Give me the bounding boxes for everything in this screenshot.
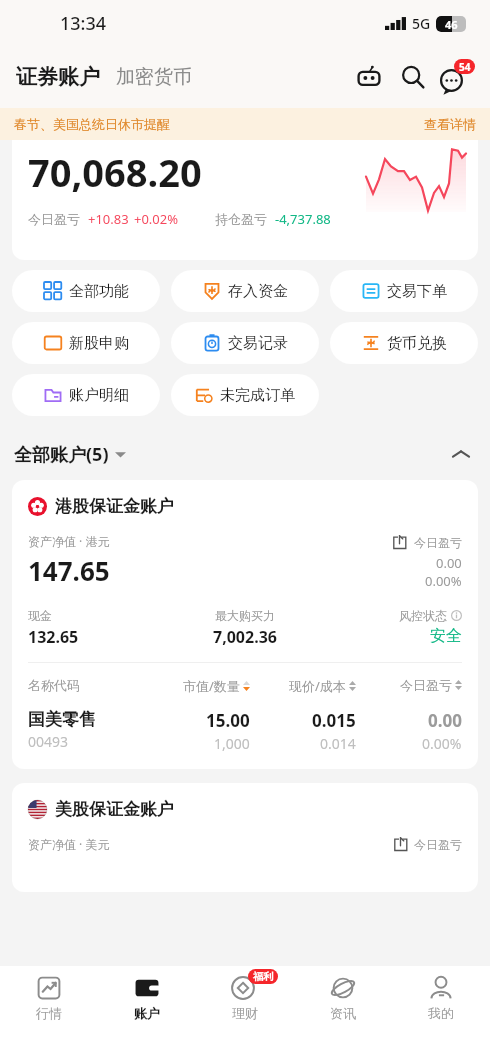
- staticText: 账户明细: [69, 386, 129, 405]
- button[interactable]: 存入资金: [171, 270, 319, 312]
- staticText: 132.65: [28, 626, 79, 648]
- staticText: -4,737.88: [275, 210, 331, 228]
- staticText: 资讯: [330, 1005, 356, 1021]
- staticText: +0.02%: [134, 210, 179, 228]
- staticText: 0.00: [436, 554, 462, 572]
- staticText: 我的: [428, 1005, 454, 1021]
- staticText: 54: [459, 60, 471, 74]
- staticText: 市值/数量: [183, 677, 240, 695]
- button[interactable]: 证券账户: [16, 64, 100, 90]
- staticText: 新股申购: [69, 334, 129, 353]
- staticText: 国美零售: [28, 709, 96, 730]
- button[interactable]: 市值/数量: [144, 677, 250, 695]
- staticText: 交易下单: [387, 282, 447, 301]
- staticText: 现金: [28, 608, 52, 623]
- staticText: 现价/成本: [289, 677, 346, 695]
- staticText: 名称代码: [28, 677, 144, 693]
- button[interactable]: Collapse: [446, 440, 476, 468]
- button[interactable]: 行情: [0, 966, 98, 1042]
- staticText: 美股保证金账户: [55, 799, 174, 820]
- staticText: 最大购买力: [215, 608, 275, 623]
- button[interactable]: 交易记录: [171, 322, 319, 364]
- staticText: +10.83: [88, 210, 129, 228]
- staticText: 全部账户(5): [14, 442, 109, 467]
- button[interactable]: 加密货币: [116, 65, 192, 90]
- button[interactable]: 我的: [392, 966, 490, 1042]
- button[interactable]: 资讯: [294, 966, 392, 1042]
- staticText: 今日盈亏: [400, 677, 452, 693]
- button[interactable]: 新股申购: [12, 322, 160, 364]
- staticText: 5G: [412, 14, 431, 33]
- staticText: 理财: [232, 1005, 258, 1021]
- button[interactable]: 春节、美国总统日休市提醒: [0, 108, 490, 140]
- staticText: 0.015: [312, 709, 356, 732]
- staticText: 查看详情: [424, 116, 476, 132]
- button[interactable]: 全部账户(5): [14, 442, 126, 467]
- staticText: 账户: [134, 1005, 160, 1021]
- staticText: 未完成订单: [220, 386, 295, 405]
- staticText: 港股保证金账户: [55, 496, 174, 517]
- staticText: 00493: [28, 732, 69, 751]
- button[interactable]: 交易下单: [330, 270, 478, 312]
- button[interactable]: 账户明细: [12, 374, 160, 416]
- staticText: 安全: [430, 626, 462, 646]
- button[interactable]: 未完成订单: [171, 374, 319, 416]
- button[interactable]: 70,068.20: [12, 140, 478, 260]
- button[interactable]: 现价/成本: [250, 677, 356, 695]
- staticText: 交易记录: [228, 334, 288, 353]
- button[interactable]: 货币兑换: [330, 322, 478, 364]
- button[interactable]: Search: [396, 60, 430, 94]
- staticText: 证券账户: [16, 64, 100, 90]
- button[interactable]: 今日盈亏: [356, 677, 462, 693]
- staticText: 15.00: [206, 709, 250, 732]
- button[interactable]: AI assistant: [352, 60, 386, 94]
- staticText: 加密货币: [116, 65, 192, 89]
- button[interactable]: Messages, 54 unread: [438, 58, 476, 96]
- button[interactable]: 港股保证金账户: [12, 480, 478, 769]
- staticText: 持仓盈亏: [215, 211, 267, 227]
- staticText: 今日盈亏: [414, 837, 462, 852]
- staticText: 风控状态: [399, 608, 447, 623]
- staticText: 46: [445, 17, 458, 32]
- staticText: 全部功能: [69, 282, 129, 301]
- staticText: 7,002.36: [213, 626, 277, 648]
- staticText: 70,068.20: [28, 146, 202, 198]
- button[interactable]: 美股保证金账户: [12, 783, 478, 892]
- button[interactable]: 账户: [98, 966, 196, 1042]
- staticText: 资产净值 · 港元: [28, 533, 110, 549]
- button[interactable]: Share: [390, 533, 408, 551]
- staticText: 0.00%: [422, 734, 462, 753]
- staticText: 0.00%: [425, 572, 462, 590]
- staticText: 行情: [36, 1005, 62, 1021]
- staticText: 货币兑换: [387, 334, 447, 353]
- staticText: 存入资金: [228, 282, 288, 301]
- button[interactable]: 全部功能: [12, 270, 160, 312]
- staticText: 1,000: [214, 734, 250, 753]
- staticText: 今日盈亏: [28, 211, 80, 227]
- staticText: 13:34: [60, 11, 107, 36]
- staticText: 春节、美国总统日休市提醒: [14, 116, 170, 132]
- staticText: 0.014: [320, 734, 356, 753]
- staticText: 福利: [253, 970, 273, 983]
- button[interactable]: 福利: [196, 966, 294, 1042]
- staticText: 今日盈亏: [414, 535, 462, 550]
- staticText: 147.65: [28, 553, 110, 588]
- staticText: 资产净值 · 美元: [28, 836, 393, 852]
- staticText: 0.00: [428, 709, 462, 732]
